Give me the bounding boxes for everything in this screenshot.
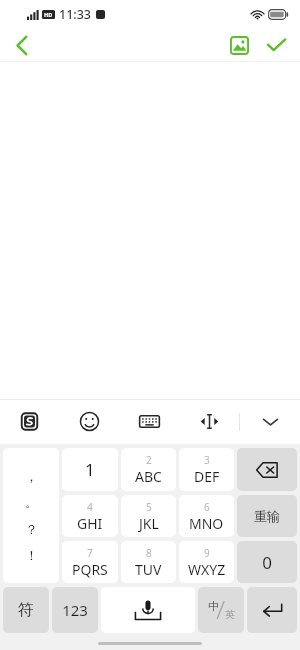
button[interactable]: Insert image [224, 30, 254, 60]
staticText: 6 [204, 500, 210, 514]
staticText: 中 [208, 599, 219, 613]
staticText: 2 [146, 453, 152, 467]
button[interactable]: Hide keyboard [240, 399, 300, 444]
staticText: 重输 [254, 508, 280, 524]
staticText: WXYZ [188, 560, 226, 579]
button[interactable]: 123 [52, 587, 98, 633]
button[interactable]: 7 [62, 541, 118, 583]
staticText: 符 [18, 600, 34, 620]
staticText: ， [25, 468, 38, 484]
staticText: 5 [146, 500, 152, 514]
button[interactable]: 1 [62, 448, 118, 491]
button[interactable]: Space, voice input [101, 587, 195, 633]
button[interactable]: 2 [121, 448, 176, 491]
staticText: MNO [189, 514, 224, 533]
staticText: PQRS [72, 560, 108, 579]
button[interactable]: 6 [179, 495, 234, 537]
staticText: 123 [62, 600, 88, 620]
button[interactable]: Move cursor [179, 399, 239, 444]
button[interactable]: Back [5, 28, 39, 62]
button[interactable]: Confirm [261, 30, 291, 60]
staticText: 1 [85, 458, 95, 481]
button[interactable]: 0 [237, 541, 297, 583]
button[interactable]: 3 [179, 448, 234, 491]
button[interactable]: Enter [247, 587, 297, 633]
button[interactable]: 符 [3, 587, 49, 633]
staticText: 。 [25, 494, 38, 510]
staticText: DEF [194, 467, 220, 486]
button[interactable]: 9 [179, 541, 234, 583]
staticText: HD [44, 11, 53, 18]
staticText: ！ [25, 547, 38, 563]
staticText: 英 [225, 608, 235, 621]
staticText: ？ [25, 521, 38, 537]
staticText: 9 [204, 546, 210, 560]
button[interactable]: 5 [121, 495, 176, 537]
button[interactable]: 重输 [237, 495, 297, 537]
staticText: GHI [77, 514, 103, 533]
button[interactable]: ， [3, 448, 59, 583]
button[interactable]: Switch keyboard [119, 399, 179, 444]
staticText: 8 [146, 546, 152, 560]
button[interactable]: 4 [62, 495, 118, 537]
staticText: JKL [139, 514, 159, 533]
staticText: 11:33 [59, 6, 92, 23]
staticText: ABC [135, 467, 162, 486]
staticText: 7 [87, 546, 93, 560]
button[interactable]: Delete [237, 448, 297, 491]
button[interactable]: Chinese English toggle [198, 587, 244, 633]
staticText: 0 [262, 551, 272, 574]
staticText: TUV [135, 560, 162, 579]
button[interactable]: Emoji [59, 399, 119, 444]
staticText: 4 [87, 500, 93, 514]
button[interactable]: 8 [121, 541, 176, 583]
staticText: 3 [204, 453, 210, 467]
button[interactable]: Sogou input method [0, 399, 59, 444]
